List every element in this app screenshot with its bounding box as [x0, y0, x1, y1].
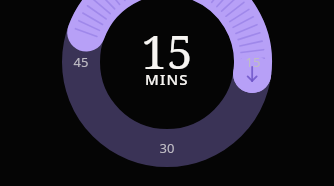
- button[interactable]: Timer duration dial, 15 minutes: [0, 0, 334, 186]
